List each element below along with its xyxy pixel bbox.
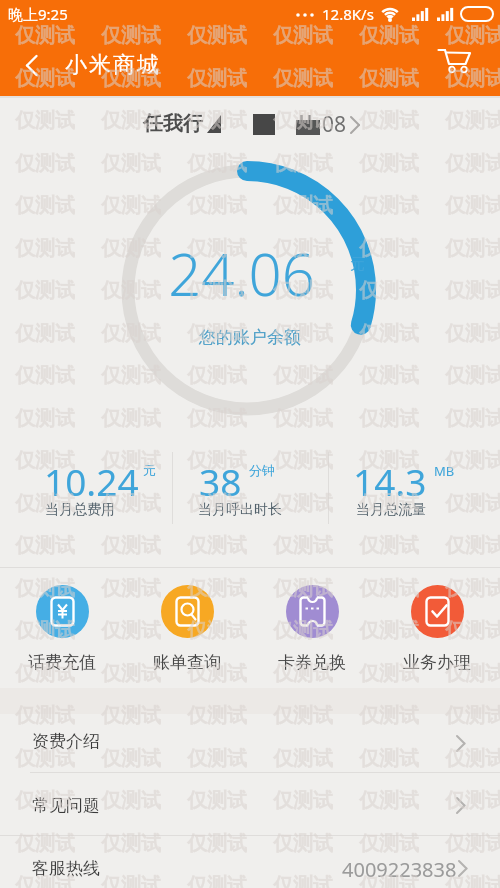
staticText: 仅测试 [101,448,161,473]
staticText: 仅测试 [273,703,333,728]
staticText: 仅测试 [359,193,419,218]
staticText: 仅测试 [187,278,247,303]
staticText: 仅测试 [445,363,500,388]
button[interactable]: 账单查询 [142,585,232,673]
staticText: 仅测试 [15,491,75,516]
staticText: 仅测试 [273,236,333,261]
staticText: MB [434,462,455,480]
staticText: 仅测试 [101,23,161,48]
staticText: 晚上9:25 [8,4,68,24]
staticText: 仅测试 [15,151,75,176]
staticText: 仅测试 [273,66,333,91]
staticText: 仅测试 [187,618,247,643]
button[interactable] [0,98,500,148]
staticText: 仅测试 [101,491,161,516]
staticText: 仅测试 [15,108,75,133]
staticText: 仅测试 [15,788,75,813]
staticText: 仅测试 [273,108,333,133]
staticText: 仅测试 [445,576,500,601]
staticText: 资费介绍 [32,731,100,752]
staticText: 仅测试 [273,746,333,771]
staticText: 08 [322,110,347,139]
staticText: 话费充值 [28,652,96,673]
staticText: 仅测试 [445,278,500,303]
staticText: 仅测试 [273,533,333,558]
staticText: 12.8K/s [322,4,374,24]
staticText: 仅测试 [187,746,247,771]
staticText: 仅测试 [101,533,161,558]
staticText: 仅测试 [15,618,75,643]
staticText: 仅测试 [15,831,75,856]
staticText: 4009223838 [342,856,457,883]
staticText: 仅测试 [445,236,500,261]
staticText: 仅测试 [187,788,247,813]
staticText: 仅测试 [15,661,75,686]
staticText: 客服热线 [32,858,100,879]
staticText: 仅测试 [187,873,247,888]
staticText: 仅测试 [445,66,500,91]
staticText: 仅测试 [101,746,161,771]
staticText: 仅测试 [359,576,419,601]
staticText: 仅测试 [101,406,161,431]
staticText: 仅测试 [273,661,333,686]
staticText: 仅测试 [15,363,75,388]
staticText: 仅测试 [359,278,419,303]
staticText: 仅测试 [101,236,161,261]
staticText: 仅测试 [359,236,419,261]
button[interactable] [0,773,500,835]
staticText: 仅测试 [101,193,161,218]
button[interactable]: 卡券兑换 [267,585,357,673]
staticText: 仅测试 [15,448,75,473]
staticText: 仅测试 [359,533,419,558]
staticText: 仅测试 [15,746,75,771]
staticText: 仅测试 [101,278,161,303]
staticText: 仅测试 [101,321,161,346]
staticText: 仅测试 [101,151,161,176]
staticText: 仅测试 [273,448,333,473]
staticText: 仅测试 [101,703,161,728]
staticText: 仅测试 [359,448,419,473]
staticText: 仅测试 [187,236,247,261]
staticText: 分钟 [249,462,275,478]
staticText: 仅测试 [273,831,333,856]
staticText: 仅测试 [15,321,75,346]
staticText: 仅测试 [445,873,500,888]
staticText: 仅测试 [273,321,333,346]
staticText: 仅测试 [15,278,75,303]
staticText: 仅测试 [187,661,247,686]
staticText: 仅测试 [359,831,419,856]
staticText: 仅测试 [187,66,247,91]
staticText: 仅测试 [101,108,161,133]
button[interactable] [437,48,473,76]
staticText: 仅测试 [445,661,500,686]
staticText: 仅测试 [187,491,247,516]
staticText: 仅测试 [445,448,500,473]
staticText: 元 [143,462,156,478]
button[interactable] [0,836,500,888]
staticText: 常见问题 [32,795,100,816]
staticText: 仅测试 [15,23,75,48]
staticText: 仅测试 [15,533,75,558]
staticText: 仅测试 [359,23,419,48]
staticText: 仅测试 [359,703,419,728]
staticText: 仅测试 [101,873,161,888]
button[interactable]: 业务办理 [392,585,482,673]
button[interactable] [0,714,500,772]
staticText: 14.3 [353,456,427,506]
staticText: 仅测试 [273,788,333,813]
staticText: 仅测试 [101,363,161,388]
staticText: 当月总流量 [356,501,426,519]
staticText: 仅测试 [101,831,161,856]
button[interactable] [25,55,38,76]
staticText: 仅测试 [359,406,419,431]
staticText: 账单查询 [153,652,221,673]
button[interactable]: 话费充值 [17,585,107,673]
staticText: 仅测试 [359,873,419,888]
staticText: 仅测试 [187,108,247,133]
staticText: 仅测试 [15,66,75,91]
staticText: 仅测试 [445,788,500,813]
staticText: 仅测试 [273,151,333,176]
staticText: 当月呼出时长 [198,501,282,519]
staticText: 仅测试 [359,746,419,771]
staticText: 仅测试 [445,533,500,558]
